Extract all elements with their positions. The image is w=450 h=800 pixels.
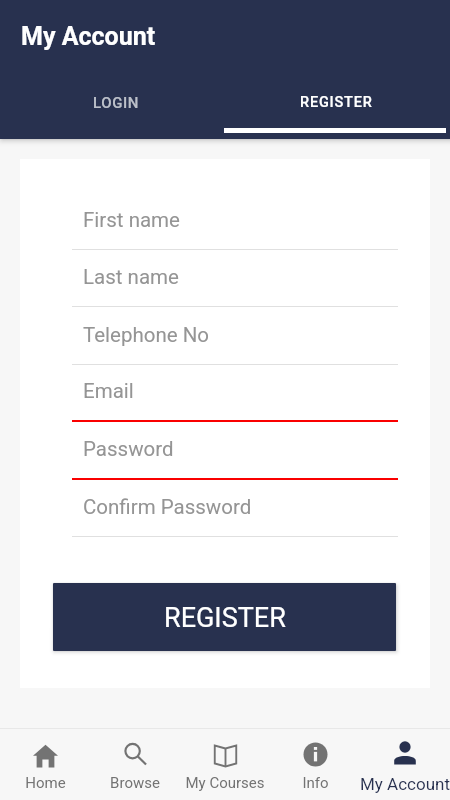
button[interactable]: REGISTER xyxy=(53,583,396,651)
staticText: My Courses xyxy=(185,774,265,792)
button[interactable]: REGISTER xyxy=(225,78,450,139)
staticText: Last name xyxy=(83,265,179,289)
staticText: My Account xyxy=(360,774,450,794)
button[interactable]: Confirm Password xyxy=(72,487,398,537)
staticText: Browse xyxy=(110,774,160,792)
staticText: First name xyxy=(83,208,180,232)
button[interactable]: First name xyxy=(72,200,398,250)
staticText: Home xyxy=(25,774,66,792)
staticText: LOGIN xyxy=(93,94,140,112)
staticText: Info xyxy=(302,774,329,792)
button[interactable]: My Courses xyxy=(180,729,270,800)
staticText: Confirm Password xyxy=(83,495,252,519)
button[interactable]: My Account xyxy=(360,729,450,800)
button[interactable]: Home xyxy=(0,729,90,800)
staticText: Telephone No xyxy=(83,323,210,347)
button[interactable]: Telephone No xyxy=(72,315,398,365)
button[interactable]: Last name xyxy=(72,257,398,307)
button[interactable]: Email xyxy=(72,371,398,421)
staticText: Email xyxy=(83,379,134,403)
button[interactable]: Browse xyxy=(90,729,180,800)
button[interactable]: Password xyxy=(72,429,398,479)
button[interactable]: LOGIN xyxy=(0,78,225,139)
staticText: REGISTER xyxy=(164,602,286,634)
staticText: Password xyxy=(83,437,174,461)
staticText: My Account xyxy=(21,22,156,51)
button[interactable]: Info xyxy=(270,729,360,800)
staticText: REGISTER xyxy=(300,94,373,111)
